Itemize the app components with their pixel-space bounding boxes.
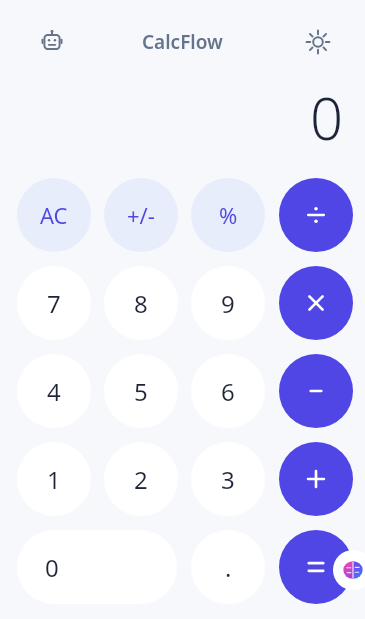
staticText: 4: [47, 375, 61, 408]
button[interactable]: AC: [17, 178, 91, 252]
button[interactable]: 9: [191, 266, 265, 340]
button[interactable]: Add: [279, 442, 353, 516]
button[interactable]: 6: [191, 354, 265, 428]
button[interactable]: .: [191, 530, 265, 604]
button[interactable]: 0: [17, 530, 177, 604]
button[interactable]: AI assistant: [333, 550, 365, 590]
staticText: 2: [134, 463, 148, 496]
button[interactable]: Toggle theme: [300, 24, 336, 60]
staticText: 9: [221, 287, 235, 320]
staticText: 1: [47, 463, 61, 496]
staticText: .: [225, 551, 232, 584]
button[interactable]: Divide: [279, 178, 353, 252]
button[interactable]: 8: [104, 266, 178, 340]
staticText: AC: [40, 200, 68, 230]
button[interactable]: 7: [17, 266, 91, 340]
button[interactable]: Subtract: [279, 354, 353, 428]
button[interactable]: 5: [104, 354, 178, 428]
button[interactable]: 2: [104, 442, 178, 516]
staticText: 8: [134, 287, 148, 320]
button[interactable]: 1: [17, 442, 91, 516]
button[interactable]: Assistant: [34, 24, 70, 60]
staticText: 0: [45, 551, 59, 584]
button[interactable]: %: [191, 178, 265, 252]
staticText: CalcFlow: [142, 29, 223, 55]
button[interactable]: 3: [191, 442, 265, 516]
staticText: 0: [309, 78, 343, 146]
staticText: 6: [221, 375, 235, 408]
staticText: +/-: [127, 200, 155, 230]
staticText: 5: [134, 375, 148, 408]
staticText: %: [219, 200, 238, 230]
staticText: 3: [221, 463, 235, 496]
button[interactable]: 4: [17, 354, 91, 428]
button[interactable]: +/-: [104, 178, 178, 252]
button[interactable]: Multiply: [279, 266, 353, 340]
staticText: 7: [47, 287, 61, 320]
button[interactable]: Equals: [279, 530, 353, 604]
